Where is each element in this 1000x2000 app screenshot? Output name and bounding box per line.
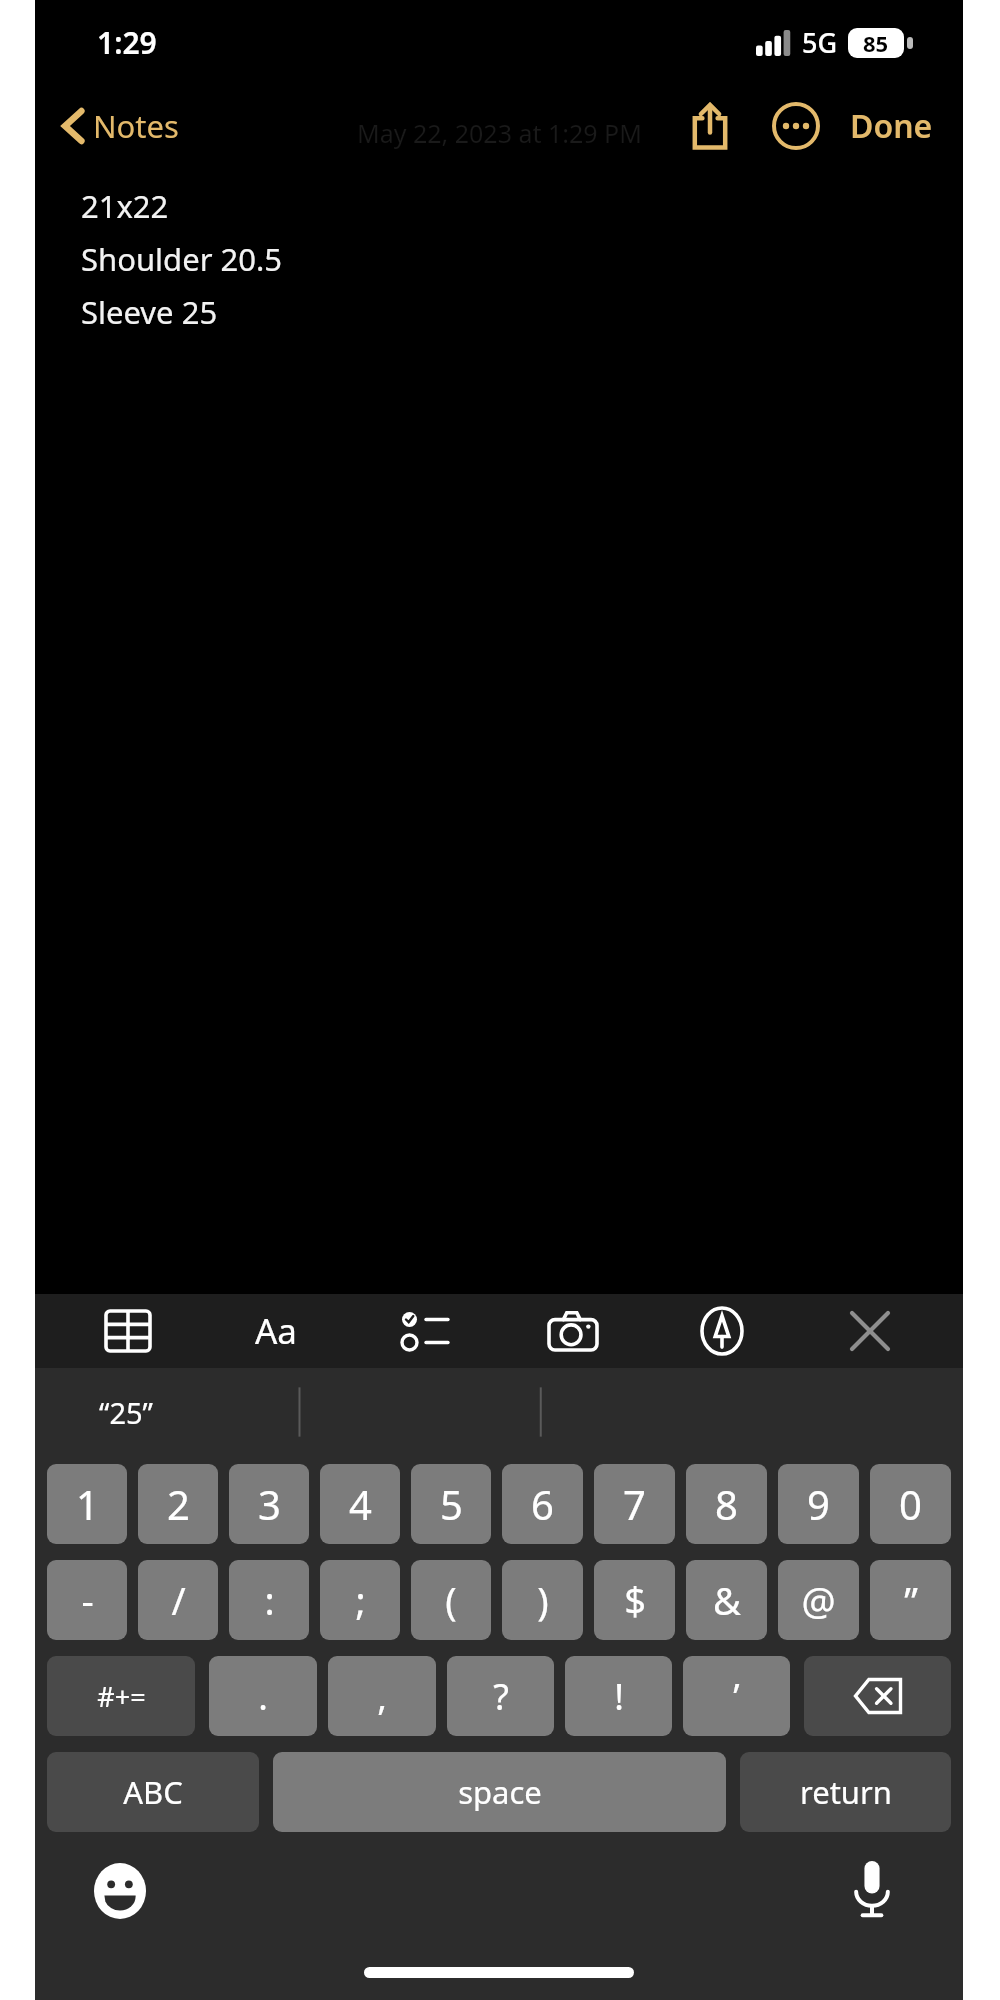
button[interactable]: Dictation [837, 1854, 907, 1924]
button[interactable]: 0 [870, 1464, 951, 1544]
button[interactable]: ’ [683, 1656, 790, 1736]
button[interactable]: “25” [83, 1387, 169, 1438]
button[interactable]: Format [241, 1296, 311, 1366]
button[interactable]: Share [678, 94, 742, 158]
button[interactable]: Emoji [85, 1856, 155, 1926]
staticText: Notes [93, 105, 179, 147]
staticText: - [81, 1574, 94, 1626]
button[interactable]: Table [93, 1296, 163, 1366]
button[interactable]: 2 [138, 1464, 218, 1544]
staticText: ” [904, 1574, 918, 1626]
button[interactable]: : [229, 1560, 309, 1640]
staticText: ? [493, 1672, 509, 1721]
button[interactable]: space [273, 1752, 726, 1832]
staticText: @ [801, 1574, 836, 1626]
button[interactable]: / [138, 1560, 218, 1640]
staticText: May 22, 2023 at 1:29 PM [357, 116, 642, 150]
button[interactable]: Checklist [390, 1296, 460, 1366]
button[interactable]: $ [594, 1560, 675, 1640]
button[interactable]: More options [764, 94, 828, 158]
staticText: 1 [76, 1477, 99, 1531]
staticText: 4 [349, 1477, 372, 1531]
button[interactable]: #+= [47, 1656, 195, 1736]
staticText: : [264, 1574, 275, 1626]
button[interactable]: & [686, 1560, 767, 1640]
staticText: 3 [258, 1477, 281, 1531]
staticText: ) [537, 1574, 549, 1626]
button[interactable]: ABC [47, 1752, 259, 1832]
staticText: #+= [97, 1678, 146, 1715]
button[interactable]: 7 [594, 1464, 675, 1544]
staticText: 0 [899, 1477, 922, 1531]
staticText: 2 [167, 1477, 190, 1531]
button[interactable]: ! [565, 1656, 672, 1736]
staticText: 21x22 [81, 185, 169, 227]
button[interactable]: 4 [320, 1464, 400, 1544]
staticText: 9 [807, 1477, 830, 1531]
button[interactable]: ” [870, 1560, 951, 1640]
staticText: 6 [531, 1477, 554, 1531]
staticText: Shoulder 20.5 [81, 238, 283, 280]
button[interactable]: 9 [778, 1464, 859, 1544]
button[interactable]: @ [778, 1560, 859, 1640]
button[interactable]: return [740, 1752, 951, 1832]
button[interactable]: 3 [229, 1464, 309, 1544]
button[interactable]: 5 [411, 1464, 491, 1544]
button[interactable]: Backspace [804, 1656, 951, 1736]
staticText: . [258, 1672, 268, 1721]
button[interactable]: 8 [686, 1464, 767, 1544]
button[interactable]: 1 [47, 1464, 127, 1544]
button[interactable]: ? [447, 1656, 554, 1736]
button[interactable]: , [328, 1656, 436, 1736]
staticText: Sleeve 25 [81, 291, 218, 333]
staticText: “25” [99, 1393, 153, 1432]
staticText: Aa [255, 1307, 298, 1355]
staticText: / [171, 1574, 186, 1626]
button[interactable]: Markup [687, 1296, 757, 1366]
button[interactable]: . [209, 1656, 317, 1736]
staticText: ( [445, 1574, 457, 1626]
staticText: ABC [123, 1771, 183, 1813]
staticText: Done [850, 104, 933, 148]
button[interactable]: Camera [538, 1296, 608, 1366]
staticText: , [377, 1672, 387, 1721]
button[interactable]: - [47, 1560, 127, 1640]
staticText: & [713, 1574, 741, 1626]
staticText: 7 [623, 1477, 646, 1531]
staticText: ; [355, 1574, 366, 1626]
button[interactable]: ) [502, 1560, 583, 1640]
staticText: ’ [733, 1672, 740, 1721]
button[interactable]: ; [320, 1560, 400, 1640]
button[interactable]: ( [411, 1560, 491, 1640]
staticText: return [800, 1771, 892, 1813]
button[interactable]: Close keyboard [835, 1296, 905, 1366]
button[interactable]: 6 [502, 1464, 583, 1544]
staticText: 5G [802, 24, 838, 61]
staticText: 1:29 [97, 22, 157, 63]
staticText: $ [624, 1574, 646, 1626]
button[interactable]: Done [842, 96, 941, 156]
staticText: 85 [863, 28, 889, 58]
staticText: 5 [440, 1477, 463, 1531]
button[interactable]: Notes [53, 97, 189, 155]
staticText: space [458, 1771, 542, 1813]
staticText: 8 [715, 1477, 738, 1531]
staticText: ! [614, 1672, 624, 1721]
